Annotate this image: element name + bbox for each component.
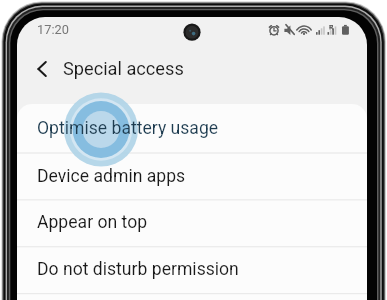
staticText: 17:20	[37, 22, 69, 37]
button[interactable]: Do not disturb permission	[17, 246, 367, 293]
button[interactable]: Device admin apps	[17, 153, 367, 200]
button[interactable]: Optimise battery usage	[17, 104, 367, 153]
staticText: Optimise battery usage	[37, 118, 219, 139]
button[interactable]: Appear on top	[17, 199, 367, 246]
staticText: Device admin apps	[37, 166, 186, 187]
staticText: Do not disturb permission	[37, 259, 239, 280]
button[interactable]: Back	[22, 49, 62, 89]
staticText: Special access	[63, 58, 184, 79]
staticText: Appear on top	[37, 212, 148, 233]
